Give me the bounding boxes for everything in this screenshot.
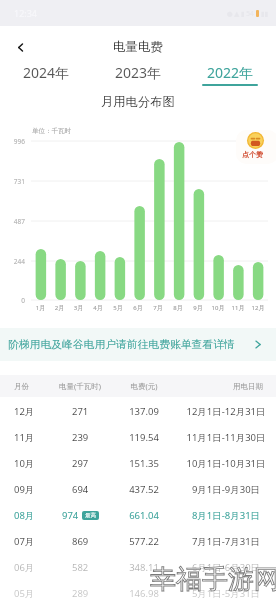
staticText: 661.04 <box>112 509 176 522</box>
staticText: 2022年 <box>207 63 254 82</box>
staticText: 8月1日-8月31日 <box>176 509 276 522</box>
staticText: 7月1日-7月31日 <box>176 535 276 548</box>
staticText: 5月 <box>108 304 128 312</box>
staticText: 6月1日-6月30日 <box>176 561 276 574</box>
staticText: 271 <box>72 405 89 418</box>
button[interactable]: 2023年 <box>92 58 184 86</box>
staticText: 幸福手游网 <box>150 563 276 596</box>
staticText: 月份 <box>14 382 48 391</box>
staticText: 577.22 <box>112 535 176 548</box>
staticText: 10月1日-10月31日 <box>176 457 276 470</box>
button[interactable]: 11月 <box>0 424 276 450</box>
staticText: 239 <box>72 431 89 444</box>
staticText: 电量电费 <box>113 39 163 55</box>
staticText: ▮▮ <box>261 10 269 18</box>
staticText: 07月 <box>14 535 48 548</box>
staticText: 6月 <box>128 304 148 312</box>
button[interactable]: Back <box>0 30 40 64</box>
button[interactable]: 09月 <box>0 476 276 502</box>
staticText: 869 <box>72 535 89 548</box>
staticText: 8月 <box>168 304 188 312</box>
staticText: 974 <box>62 509 79 522</box>
staticText: 289 <box>72 587 89 600</box>
button[interactable]: 08月 <box>0 502 276 528</box>
staticText: 09月 <box>14 483 48 496</box>
button[interactable]: 05月 <box>0 580 276 600</box>
staticText: 996 <box>0 137 25 146</box>
staticText: 05月 <box>14 587 48 600</box>
staticText: 电量(千瓦时) <box>48 381 112 391</box>
staticText: 月用电分布图 <box>101 94 175 109</box>
staticText: 1月 <box>31 304 50 312</box>
staticText: 10月 <box>208 304 228 312</box>
staticText: 06月 <box>14 561 48 574</box>
staticText: 694 <box>72 483 89 496</box>
staticText: 348.11 <box>112 561 176 574</box>
staticText: 9月1日-9月30日 <box>176 483 276 496</box>
staticText: 2023年 <box>115 63 162 82</box>
staticText: 7月 <box>148 304 168 312</box>
staticText: 146.98 <box>112 587 176 600</box>
staticText: 单位：千瓦时 <box>32 127 71 135</box>
staticText: 137.09 <box>112 405 176 418</box>
staticText: 点个赞 <box>242 150 263 159</box>
button[interactable]: 阶梯用电及峰谷电用户请前往电费账单查看详情 <box>0 328 276 361</box>
button[interactable]: 07月 <box>0 528 276 554</box>
button[interactable]: 06月 <box>0 554 276 580</box>
staticText: 244 <box>0 257 25 266</box>
staticText: 487 <box>0 217 25 226</box>
staticText: 731 <box>0 177 25 186</box>
button[interactable]: 2024年 <box>0 58 92 86</box>
staticText: 151.35 <box>112 457 176 470</box>
staticText: 4月 <box>88 304 108 312</box>
button[interactable]: 10月 <box>0 450 276 476</box>
staticText: 582 <box>72 561 89 574</box>
button[interactable]: 2022年 <box>184 58 276 86</box>
button[interactable]: 点个赞 <box>236 130 276 164</box>
staticText: 3月 <box>69 304 88 312</box>
staticText: 0 <box>0 296 25 305</box>
staticText: 用电日期 <box>176 382 263 391</box>
staticText: 11月1日-11月30日 <box>176 431 276 444</box>
staticText: 9月 <box>188 304 208 312</box>
staticText: 08月 <box>14 509 48 522</box>
staticText: 11月 <box>14 431 48 444</box>
button[interactable]: 12月 <box>0 398 276 424</box>
staticText: 11月 <box>228 304 248 312</box>
staticText: 电费(元) <box>112 381 176 391</box>
staticText: 12月 <box>14 405 48 418</box>
staticText: 119.54 <box>112 431 176 444</box>
staticText: 幸福手游网 <box>150 563 276 596</box>
staticText: 阶梯用电及峰谷电用户请前往电费账单查看详情 <box>8 338 255 352</box>
staticText: 437.52 <box>112 483 176 496</box>
staticText: ● ▲ ▮ 54 <box>227 9 254 18</box>
staticText: 12月1日-12月31日 <box>176 405 276 418</box>
staticText: 10月 <box>14 457 48 470</box>
staticText: 2月 <box>50 304 69 312</box>
staticText: 最高 <box>85 512 96 519</box>
staticText: 5月1日-5月31日 <box>176 587 276 600</box>
staticText: 297 <box>72 457 89 470</box>
staticText: 2024年 <box>23 63 70 82</box>
staticText: 12月 <box>248 304 268 312</box>
